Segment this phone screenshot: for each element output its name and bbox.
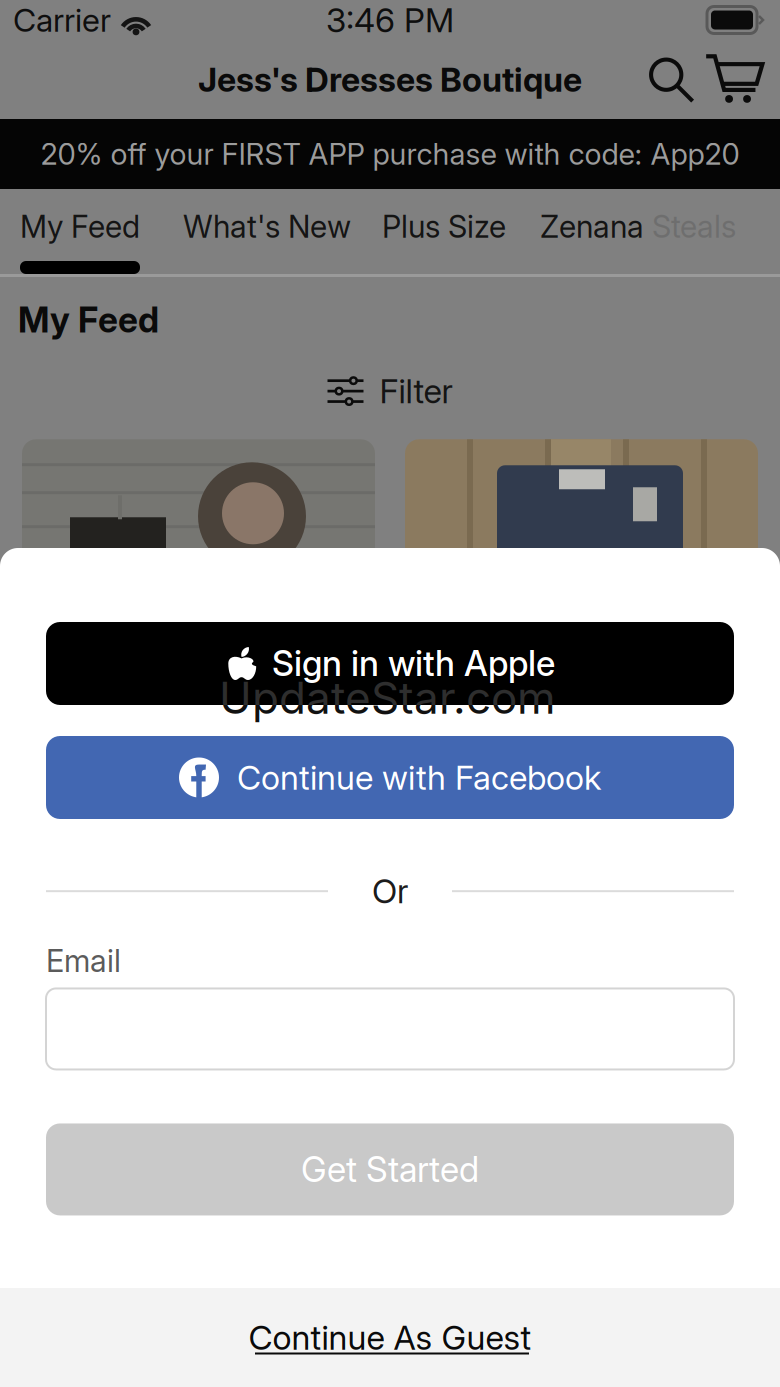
staticText: Steals [652,208,736,245]
staticText: Email [46,942,121,979]
staticText: Filter [379,371,452,411]
staticText: What's New [183,208,351,245]
staticText: My Feed [18,299,159,341]
staticText: Sign in with Apple [272,642,555,684]
button[interactable]: Cart [702,47,766,111]
staticText: Or [372,871,408,911]
button[interactable]: Search [642,50,700,108]
button[interactable]: Filter [0,371,780,411]
staticText: 20% off your FIRST APP purchase with cod… [40,136,739,172]
staticText: Zenana [540,208,644,245]
staticText: Jess's Dresses Boutique [198,59,582,100]
button[interactable]: Get Started [46,1123,734,1215]
button[interactable]: Sign in with Apple [46,622,734,705]
staticText: Plus Size [382,208,506,245]
staticText: Carrier [13,1,111,39]
staticText: Continue with Facebook [237,757,601,798]
staticText: UpdateStar.com [219,671,556,724]
button[interactable]: Zenana [506,208,736,245]
button[interactable]: Plus Size [351,208,506,245]
staticText: 3:46 PM [326,0,454,40]
button[interactable]: Continue As Guest [0,1288,780,1387]
staticText: Get Started [301,1148,479,1190]
staticText: My Feed [20,208,140,245]
button[interactable]: What's New [140,208,351,245]
button[interactable]: Continue with Facebook [46,736,734,819]
staticText: Continue As Guest [248,1317,531,1358]
button[interactable]: My Feed [20,208,140,274]
staticText: UpdateStar.com [219,671,556,724]
